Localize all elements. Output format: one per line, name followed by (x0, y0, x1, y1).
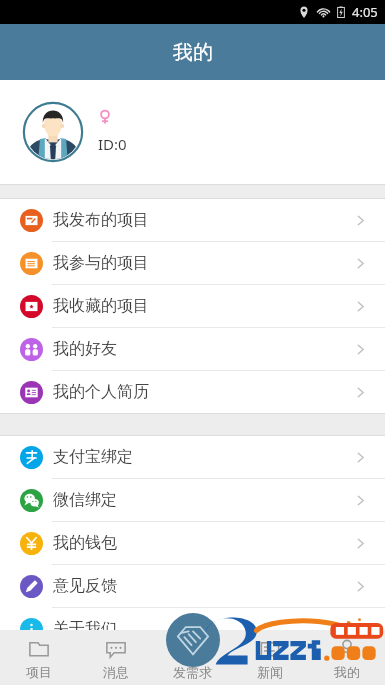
button[interactable]: 我的个人简历 (0, 371, 385, 413)
button[interactable]: ID:0 (0, 80, 385, 184)
button[interactable]: 我的好友 (0, 328, 385, 370)
staticText: 关于我们 (53, 619, 117, 639)
staticText: 我的钱包 (53, 533, 117, 553)
staticText: 我发布的项目 (53, 210, 149, 230)
button[interactable]: 关于我们 (0, 608, 385, 650)
staticText: 新闻 (257, 664, 283, 680)
button[interactable]: 新闻 (231, 630, 308, 685)
button[interactable]: 发需求 (154, 630, 231, 685)
staticText: 我收藏的项目 (53, 296, 149, 316)
button[interactable]: 支付宝绑定 (0, 436, 385, 478)
staticText: 意见反馈 (53, 576, 117, 596)
staticText: 4:05 (352, 3, 378, 21)
staticText: 项目 (26, 664, 52, 680)
button[interactable]: 我的钱包 (0, 522, 385, 564)
staticText: 我的 (334, 664, 360, 680)
staticText: 我的个人简历 (53, 382, 149, 402)
button[interactable]: 意见反馈 (0, 565, 385, 607)
button[interactable]: 我的 (308, 630, 385, 685)
staticText: 微信绑定 (53, 490, 117, 510)
staticText: 消息 (103, 664, 129, 680)
button[interactable]: 我收藏的项目 (0, 285, 385, 327)
staticText: ID:0 (98, 134, 127, 154)
staticText: 发需求 (173, 664, 212, 680)
button[interactable]: 发需求 (166, 613, 220, 667)
button[interactable]: 项目 (0, 630, 77, 685)
staticText: 我的好友 (53, 339, 117, 359)
button[interactable]: 我发布的项目 (0, 199, 385, 241)
button[interactable]: 我参与的项目 (0, 242, 385, 284)
staticText: 我的 (173, 40, 213, 65)
button[interactable]: 微信绑定 (0, 479, 385, 521)
button[interactable]: 消息 (77, 630, 154, 685)
staticText: 支付宝绑定 (53, 447, 133, 467)
staticText: 我参与的项目 (53, 253, 149, 273)
